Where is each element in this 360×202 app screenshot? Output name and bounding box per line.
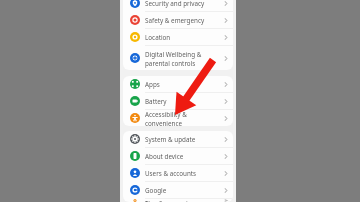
staticText: Digital Wellbeing & parental controls bbox=[145, 50, 221, 67]
button[interactable]: Apps bbox=[123, 76, 233, 93]
staticText: Google bbox=[145, 186, 221, 195]
button[interactable]: System & update bbox=[123, 131, 233, 148]
staticText: Tips & support bbox=[145, 199, 221, 202]
staticText: About device bbox=[145, 152, 221, 161]
button[interactable]: Safety & emergency bbox=[123, 12, 233, 29]
staticText: System & update bbox=[145, 135, 221, 144]
other: Arrow pointing to Accessibility & conven… bbox=[0, 0, 360, 202]
button[interactable]: Tips & support bbox=[123, 199, 233, 202]
button[interactable]: About device bbox=[123, 148, 233, 165]
staticText: Apps bbox=[145, 80, 221, 89]
button[interactable]: Location bbox=[123, 29, 233, 46]
staticText: Location bbox=[145, 33, 221, 42]
staticText: Safety & emergency bbox=[145, 16, 221, 25]
staticText: Users & accounts bbox=[145, 169, 221, 178]
button[interactable]: Security and privacy bbox=[123, 0, 233, 12]
staticText: Accessibility & convenience bbox=[145, 110, 221, 126]
staticText: Battery bbox=[145, 97, 221, 106]
button[interactable]: Battery bbox=[123, 93, 233, 110]
button[interactable]: Digital Wellbeing & parental controls bbox=[123, 46, 233, 70]
button[interactable]: Accessibility & convenience bbox=[123, 110, 233, 126]
button[interactable]: Google bbox=[123, 182, 233, 199]
staticText: Security and privacy bbox=[145, 0, 221, 8]
button[interactable]: Users & accounts bbox=[123, 165, 233, 182]
